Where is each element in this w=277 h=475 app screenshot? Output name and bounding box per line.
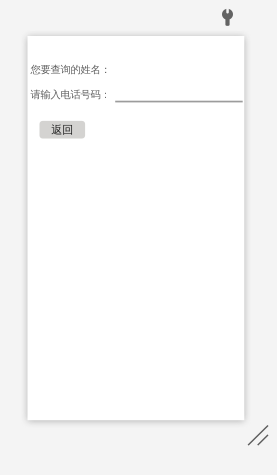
button[interactable]: 请输入电话号码 xyxy=(115,89,243,102)
staticText: 请输入电话号码： xyxy=(30,88,110,101)
staticText: 您要查询的姓名： xyxy=(30,63,110,76)
staticText: 返回 xyxy=(51,123,73,137)
button[interactable]: 返回 xyxy=(39,121,85,138)
button[interactable]: Tools xyxy=(215,2,240,32)
